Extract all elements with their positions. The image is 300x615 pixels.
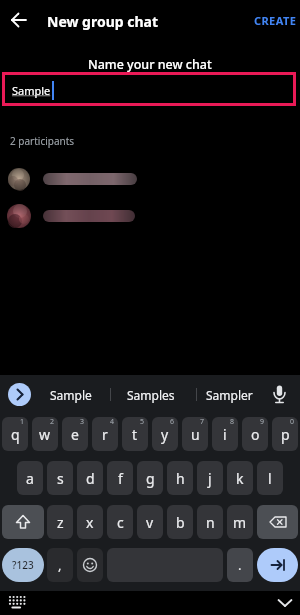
button[interactable]	[0, 0, 40, 40]
button[interactable]: ?123	[2, 548, 44, 582]
staticText: Name your new chat	[88, 56, 212, 73]
staticText: CREATE	[254, 13, 297, 28]
button[interactable]: g	[137, 461, 163, 495]
button[interactable]: i	[212, 417, 238, 451]
button[interactable]: .	[227, 548, 253, 582]
button[interactable]: c	[107, 505, 133, 539]
button[interactable]: Sampler	[197, 381, 261, 408]
button[interactable]	[0, 198, 300, 235]
staticText: 8	[230, 417, 235, 427]
staticText: Sample	[50, 387, 92, 403]
staticText: i	[223, 425, 227, 444]
staticText: f	[118, 469, 123, 488]
staticText: v	[146, 513, 154, 532]
button[interactable]: u	[182, 417, 208, 451]
staticText: s	[57, 469, 64, 488]
staticText: 1	[20, 417, 25, 427]
button[interactable]: w	[32, 417, 58, 451]
staticText: 3	[80, 417, 85, 427]
button[interactable]: f	[107, 461, 133, 495]
staticText: r	[102, 425, 108, 444]
staticText: 2	[50, 417, 55, 427]
button[interactable]	[8, 383, 31, 406]
staticText: u	[191, 425, 200, 444]
button[interactable]: x	[77, 505, 103, 539]
staticText: o	[251, 425, 260, 444]
staticText: 2 participants	[10, 134, 75, 148]
staticText: h	[176, 469, 185, 488]
button[interactable]: Sample	[40, 381, 102, 408]
button[interactable]: d	[77, 461, 103, 495]
staticText: New group chat	[47, 12, 159, 31]
staticText: k	[236, 469, 244, 488]
staticText: Sample	[12, 83, 51, 98]
button[interactable]: a	[17, 461, 43, 495]
button[interactable]: n	[197, 505, 223, 539]
button[interactable]	[257, 505, 298, 539]
staticText: .	[238, 556, 242, 574]
button[interactable]: ,	[47, 548, 73, 582]
staticText: 9	[260, 417, 265, 427]
button[interactable]: m	[227, 505, 253, 539]
button[interactable]	[2, 505, 44, 539]
staticText: n	[206, 513, 215, 532]
button[interactable]	[267, 382, 292, 407]
staticText: 5	[140, 417, 145, 427]
staticText: Sampler	[206, 387, 253, 403]
button[interactable]: h	[167, 461, 193, 495]
staticText: 7	[200, 417, 205, 427]
button[interactable]: t	[122, 417, 148, 451]
button[interactable]	[4, 591, 32, 615]
button[interactable]: Samples	[118, 381, 184, 408]
staticText: Samples	[127, 387, 175, 403]
staticText: 6	[170, 417, 175, 427]
button[interactable]: p	[272, 417, 298, 451]
staticText: t	[132, 425, 138, 444]
button[interactable]: v	[137, 505, 163, 539]
staticText: d	[86, 469, 95, 488]
button[interactable]: r	[92, 417, 118, 451]
staticText: e	[71, 425, 79, 444]
button[interactable]: l	[257, 461, 283, 495]
staticText: 4	[110, 417, 115, 427]
staticText: c	[117, 513, 124, 532]
staticText: l	[268, 469, 272, 488]
button[interactable]	[257, 548, 298, 582]
button[interactable]: o	[242, 417, 268, 451]
staticText: b	[176, 513, 185, 532]
button[interactable]: j	[197, 461, 223, 495]
staticText: ,	[58, 556, 62, 574]
staticText: m	[233, 513, 247, 532]
staticText: w	[39, 425, 51, 444]
button[interactable]: y	[152, 417, 178, 451]
button[interactable]: q	[2, 417, 28, 451]
staticText: j	[208, 469, 212, 488]
button[interactable]: z	[47, 505, 73, 539]
button[interactable]	[0, 162, 300, 197]
staticText: g	[146, 469, 155, 488]
button[interactable]: s	[47, 461, 73, 495]
staticText: ?123	[12, 558, 34, 572]
button[interactable]	[272, 592, 298, 614]
button[interactable]	[77, 548, 103, 582]
button[interactable]: Sample	[2, 72, 296, 106]
button[interactable]: e	[62, 417, 88, 451]
staticText: z	[57, 513, 64, 532]
staticText: y	[161, 425, 169, 444]
button[interactable]: b	[167, 505, 193, 539]
staticText: x	[86, 513, 94, 532]
staticText: q	[11, 425, 20, 444]
staticText: a	[26, 469, 34, 488]
button[interactable]: CREATE	[250, 6, 300, 34]
button[interactable]: k	[227, 461, 253, 495]
staticText: p	[281, 425, 290, 444]
staticText: 0	[290, 417, 295, 427]
